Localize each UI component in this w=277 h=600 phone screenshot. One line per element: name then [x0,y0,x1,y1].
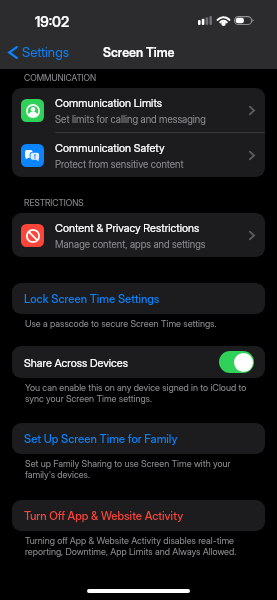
other: Communication safety [25,150,40,162]
other: Communication limits [26,104,40,118]
staticText: Protect from sensitive content [55,158,184,170]
staticText: Screen Time [103,45,175,60]
button[interactable]: Content and privacy restrictions [12,213,265,257]
button[interactable]: Turn Off App & Website Activity [12,500,265,531]
staticText: You can enable this on any device signed… [25,382,255,404]
staticText: Communication Limits [55,96,163,109]
staticText: Share Across Devices [24,356,219,369]
staticText: 19:02 [35,13,70,30]
button[interactable]: Lock Screen Time Settings [12,283,265,314]
staticText: Content & Privacy Restrictions [55,221,200,234]
staticText: Set up Family Sharing to use Screen Time… [25,458,255,480]
button[interactable]: Communication limits [12,88,265,132]
button[interactable]: Communication safety [12,133,265,177]
staticText: Set limits for calling and messaging [55,113,206,125]
staticText: RESTRICTIONS [24,198,84,208]
button[interactable]: Settings [5,42,72,62]
staticText: Manage content, apps and settings [55,238,206,250]
button[interactable]: Share Across Devices [12,346,265,378]
staticText: Set Up Screen Time for Family [24,432,178,446]
staticText: Turn Off App & Website Activity [24,509,184,523]
staticText: Lock Screen Time Settings [24,292,160,306]
staticText: Settings [22,44,69,60]
staticText: COMMUNICATION [24,73,97,83]
staticText: Communication Safety [55,141,165,154]
button[interactable]: Set Up Screen Time for Family [12,423,265,454]
other: Content and privacy restrictions [26,229,40,243]
staticText: Use a passcode to secure Screen Time set… [25,318,217,329]
staticText: Turning off App & Website Activity disab… [25,535,255,557]
